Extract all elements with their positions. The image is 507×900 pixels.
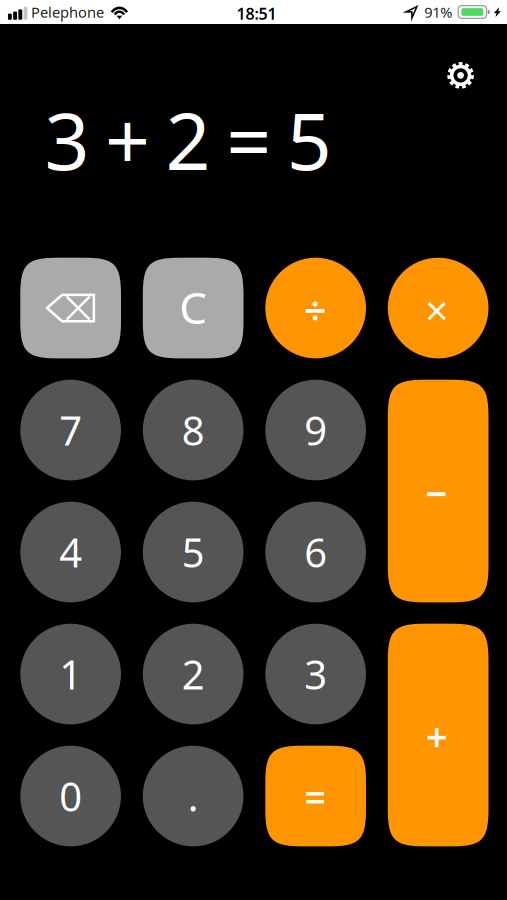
staticText: 0 xyxy=(59,769,82,823)
staticText: 8 xyxy=(182,403,205,457)
button[interactable]: 0 xyxy=(20,746,121,846)
staticText: Pelephone xyxy=(31,2,104,22)
staticText: 6 xyxy=(304,525,327,579)
button[interactable]: 8 xyxy=(143,380,243,480)
button[interactable]: Divide xyxy=(265,258,366,358)
button[interactable]: 5 xyxy=(143,502,243,602)
staticText: 91% xyxy=(424,2,452,22)
button[interactable]: 7 xyxy=(20,380,121,480)
staticText: C xyxy=(179,278,207,336)
button[interactable]: 2 xyxy=(143,624,243,724)
staticText: 4 xyxy=(59,525,82,579)
button[interactable]: Clear xyxy=(143,258,243,358)
staticText: 9 xyxy=(304,403,327,457)
staticText: 5 xyxy=(182,525,205,579)
button[interactable]: Equals xyxy=(265,746,366,846)
button[interactable]: Minus xyxy=(388,380,488,602)
button[interactable]: 4 xyxy=(20,502,121,602)
staticText: 1 xyxy=(59,647,82,701)
button[interactable]: Delete xyxy=(20,258,121,358)
button[interactable]: 6 xyxy=(265,502,366,602)
button[interactable]: Settings xyxy=(439,53,483,97)
button[interactable]: 3 xyxy=(265,624,366,724)
staticText: . xyxy=(188,769,199,823)
button[interactable]: Plus xyxy=(388,624,488,846)
staticText: 2 xyxy=(182,647,205,701)
button[interactable]: Multiply xyxy=(388,258,488,358)
staticText: 18:51 xyxy=(237,3,277,24)
button[interactable]: 9 xyxy=(265,380,366,480)
staticText: 3 + 2 = 5 xyxy=(44,87,332,192)
staticText: 7 xyxy=(59,403,82,457)
button[interactable]: 1 xyxy=(20,624,121,724)
staticText: 3 xyxy=(304,647,327,701)
button[interactable]: . xyxy=(143,746,243,846)
